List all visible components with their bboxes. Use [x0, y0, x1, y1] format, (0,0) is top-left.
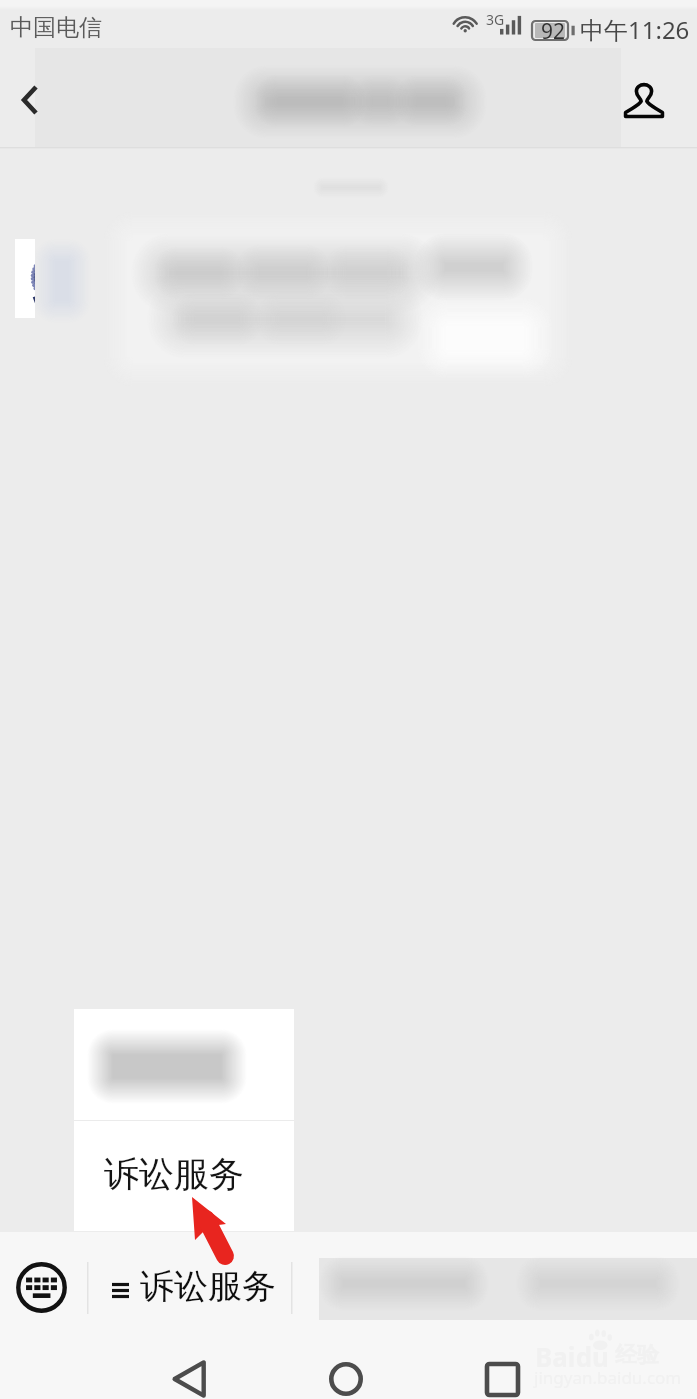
- button[interactable]: [74, 1009, 294, 1120]
- staticText: 92: [541, 17, 566, 46]
- button[interactable]: Recents: [472, 1349, 532, 1399]
- button[interactable]: 诉讼服务: [74, 1121, 294, 1231]
- button[interactable]: Back: [3, 73, 57, 127]
- staticText: 3G: [486, 10, 505, 29]
- button[interactable]: Keyboard: [15, 1261, 67, 1313]
- staticText: 诉讼服务: [140, 1265, 276, 1308]
- button[interactable]: Profile: [616, 71, 672, 127]
- staticText: 诉讼服务: [104, 1152, 244, 1196]
- button[interactable]: Home: [316, 1349, 376, 1399]
- button[interactable]: Back: [159, 1349, 219, 1399]
- staticText: 中午11:26: [580, 13, 690, 46]
- staticText: 中国电信: [10, 13, 102, 42]
- button[interactable]: 诉讼服务: [112, 1269, 276, 1312]
